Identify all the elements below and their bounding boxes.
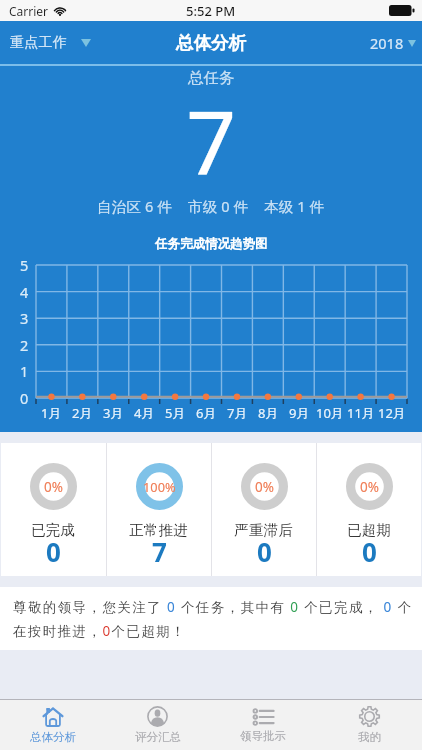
staticText: 4月 xyxy=(134,404,155,422)
staticText: 0% xyxy=(44,478,63,496)
staticText: 总体分析 xyxy=(30,730,76,744)
staticText: 6月 xyxy=(196,404,217,422)
staticText: 5:52 PM xyxy=(186,2,236,20)
button[interactable]: 0% xyxy=(1,443,106,576)
staticText: 2 xyxy=(20,335,29,355)
staticText: 正常推进 xyxy=(129,521,189,539)
staticText: 2018 xyxy=(370,33,404,53)
staticText: 严重滞后 xyxy=(234,521,294,539)
button[interactable]: 100% xyxy=(107,443,211,576)
staticText: 我的 xyxy=(358,730,381,744)
staticText: 0% xyxy=(255,478,274,496)
button[interactable]: 0% xyxy=(317,443,421,576)
other: 总体分析 xyxy=(43,707,63,727)
staticText: 100% xyxy=(143,478,176,495)
staticText: 市级 0 件 xyxy=(188,196,249,216)
staticText: 0 xyxy=(257,534,272,564)
staticText: 0 xyxy=(46,534,61,564)
staticText: 总任务 xyxy=(188,68,235,88)
staticText: 重点工作 xyxy=(10,34,68,52)
staticText: 7 xyxy=(152,534,167,564)
staticText: 任务完成情况趋势图 xyxy=(155,236,268,252)
staticText: Carrier xyxy=(9,3,49,19)
staticText: 3月 xyxy=(103,404,124,422)
other: 我的 xyxy=(359,706,380,727)
button[interactable]: 领导批示 xyxy=(210,700,316,750)
staticText: 4 xyxy=(20,282,29,302)
staticText: 评分汇总 xyxy=(135,730,181,744)
staticText: 10月 xyxy=(316,404,344,422)
staticText: 已完成 xyxy=(31,521,76,539)
staticText: 5月 xyxy=(165,404,186,422)
staticText: 0 xyxy=(20,388,29,408)
button[interactable]: 我的 xyxy=(316,700,422,750)
staticText: 2月 xyxy=(72,404,93,422)
staticText: 本级 1 件 xyxy=(264,196,325,216)
other: 领导批示 xyxy=(253,708,274,726)
staticText: 0% xyxy=(360,478,379,496)
staticText: 已超期 xyxy=(347,521,392,539)
button[interactable]: 0% xyxy=(212,443,316,576)
staticText: 3 xyxy=(20,308,29,328)
staticText: 1月 xyxy=(41,404,62,422)
staticText: 总体分析 xyxy=(176,32,246,54)
button[interactable]: 2018 xyxy=(358,24,422,62)
button[interactable]: 总体分析 xyxy=(0,700,105,750)
staticText: 9月 xyxy=(289,404,310,422)
staticText: 12月 xyxy=(378,404,406,422)
staticText: 7 xyxy=(186,81,237,177)
button[interactable]: 重点工作 xyxy=(0,25,103,61)
staticText: 0 xyxy=(362,534,377,564)
other: 评分汇总 xyxy=(147,706,168,727)
staticText: 8月 xyxy=(258,404,279,422)
staticText: 领导批示 xyxy=(240,729,286,743)
staticText: 自治区 6 件 xyxy=(97,196,173,216)
staticText: 5 xyxy=(20,255,29,275)
staticText: 7月 xyxy=(227,404,248,422)
staticText: 1 xyxy=(20,361,29,381)
button[interactable]: 评分汇总 xyxy=(105,700,210,750)
staticText: 尊敬的领导，您关注了 0 个任务，其中有 0 个已完成， 0 个 在按时推进，0… xyxy=(13,598,413,640)
staticText: 11月 xyxy=(347,404,375,422)
